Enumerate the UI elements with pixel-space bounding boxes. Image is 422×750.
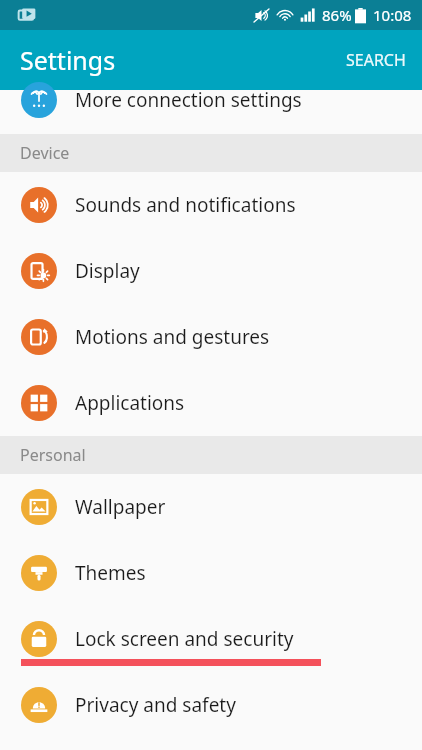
button[interactable]: Sounds and notifications <box>0 172 422 238</box>
staticText: More connection settings <box>75 87 302 113</box>
staticText: Sounds and notifications <box>75 192 296 218</box>
button[interactable]: Motions and gestures <box>0 304 422 370</box>
button[interactable]: SEARCH <box>330 39 422 81</box>
staticText: Settings <box>20 43 116 77</box>
staticText: Applications <box>75 390 185 416</box>
staticText: 86% <box>322 5 352 25</box>
button[interactable]: Themes <box>0 540 422 606</box>
staticText: Motions and gestures <box>75 324 270 350</box>
button[interactable]: More connection settings <box>0 90 422 134</box>
staticText: Lock screen and security <box>75 626 294 652</box>
staticText: SEARCH <box>346 49 406 71</box>
staticText: Display <box>75 258 140 284</box>
button[interactable]: Wallpaper <box>0 474 422 540</box>
staticText: Privacy and safety <box>75 692 236 718</box>
staticText: Themes <box>75 560 146 586</box>
button[interactable]: Applications <box>0 370 422 436</box>
button[interactable]: Privacy and safety <box>0 672 422 738</box>
staticText: Personal <box>20 444 86 466</box>
staticText: 10:08 <box>373 5 412 25</box>
staticText: Device <box>20 142 70 164</box>
button[interactable]: Display <box>0 238 422 304</box>
button[interactable]: Lock screen and security <box>0 606 422 672</box>
staticText: Wallpaper <box>75 494 166 520</box>
